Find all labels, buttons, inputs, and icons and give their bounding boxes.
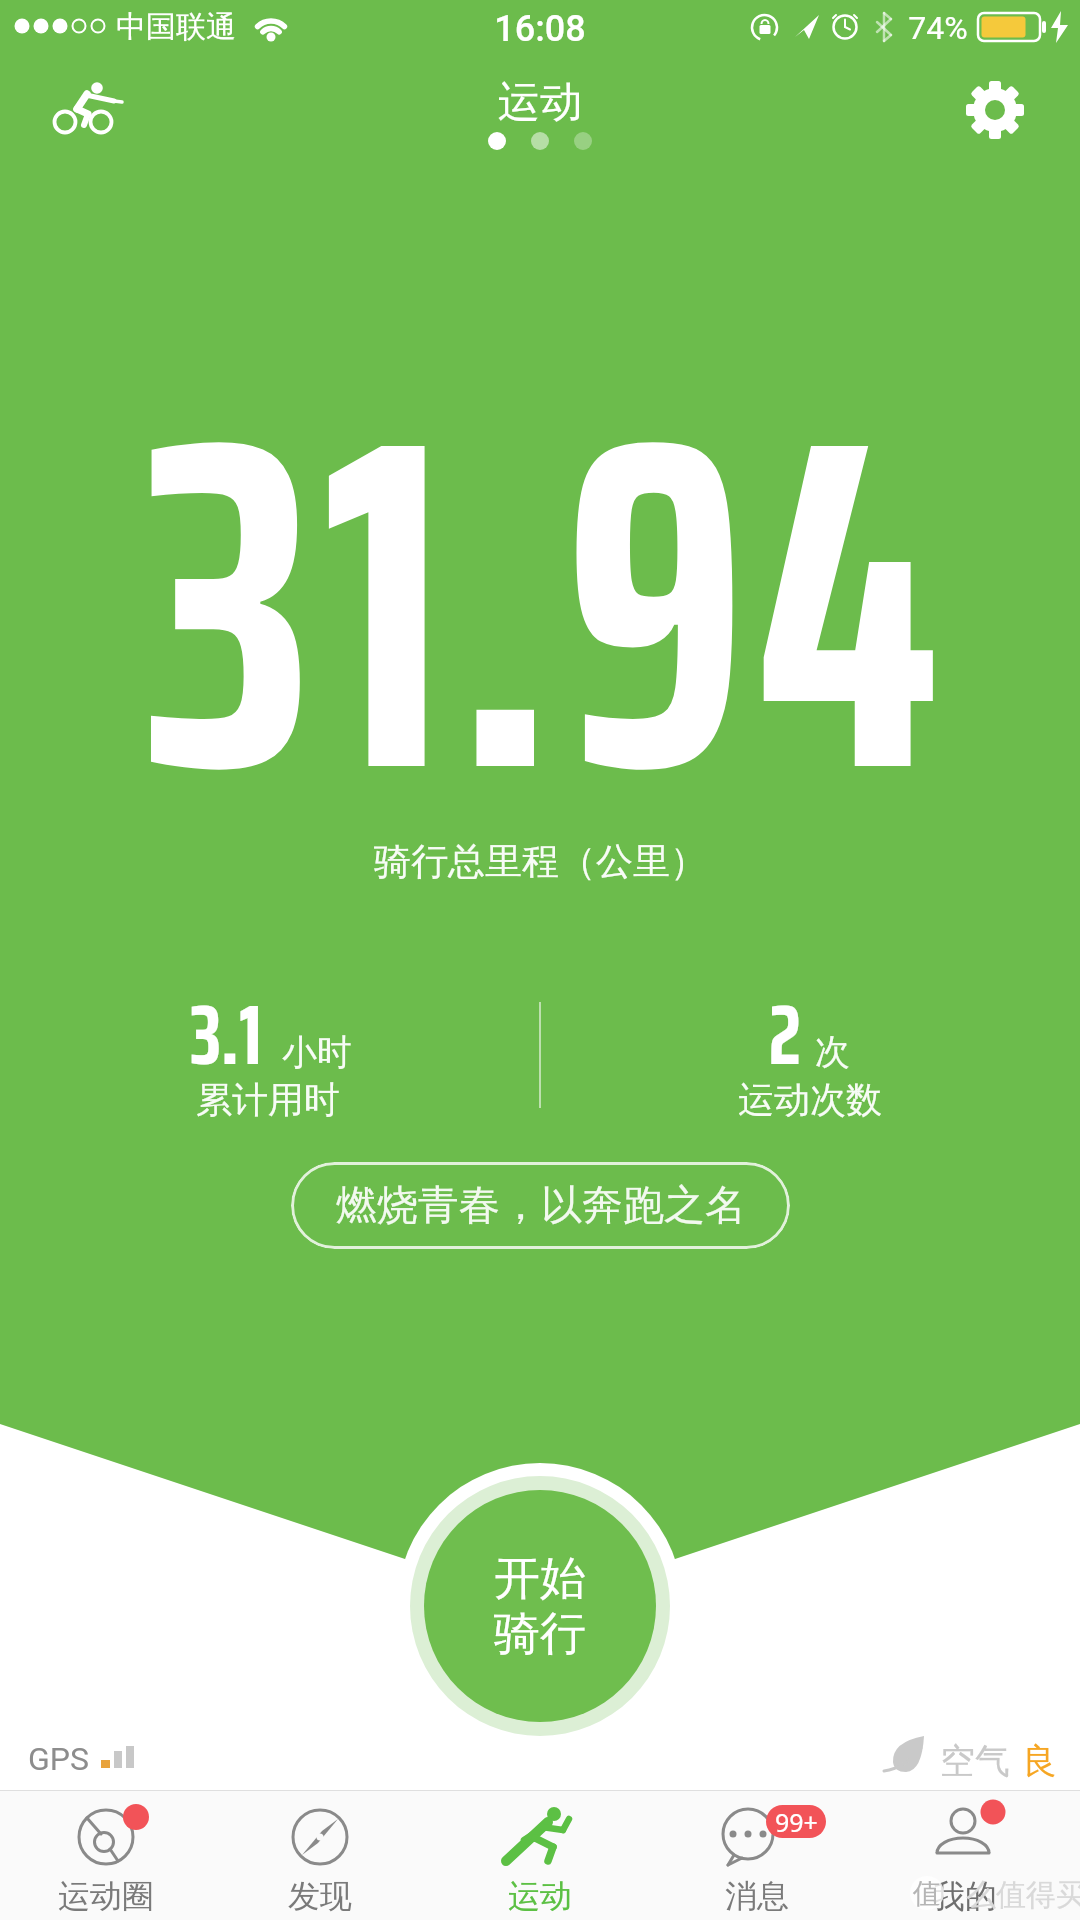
staticText: 运动次数	[738, 1077, 882, 1113]
staticText: 消息	[725, 1876, 789, 1916]
staticText: GPS	[28, 1740, 89, 1774]
button[interactable]: 运动圈	[0, 1791, 216, 1920]
staticText: 中国联通	[116, 8, 236, 46]
staticText: 我的	[933, 1876, 997, 1916]
staticText: 运动	[498, 76, 582, 122]
staticText: 小时	[282, 1030, 348, 1066]
staticText: 么值得买	[966, 1876, 1080, 1912]
staticText: 运动	[508, 1876, 572, 1916]
staticText: 空气	[940, 1739, 1006, 1775]
staticText: 2	[769, 969, 801, 1101]
staticText: 31.94	[144, 238, 948, 938]
button[interactable]	[958, 72, 1034, 148]
button[interactable]: 运动	[432, 1791, 648, 1920]
staticText: 开始 骑行	[494, 1550, 586, 1663]
staticText: 发现	[288, 1876, 352, 1916]
staticText: 运动圈	[58, 1876, 154, 1916]
button[interactable]: 99+	[648, 1791, 864, 1920]
button[interactable]: 燃烧青春，以奔跑之名	[291, 1162, 790, 1249]
staticText: 骑行总里程（公里）	[374, 838, 707, 884]
staticText: 良	[1022, 1739, 1057, 1775]
button[interactable]	[35, 72, 145, 147]
staticText: 3.1	[190, 969, 262, 1101]
staticText: 16:08	[494, 8, 586, 48]
staticText: 74%	[908, 9, 968, 45]
staticText: 燃烧青春，以奔跑之名	[336, 1180, 746, 1232]
button[interactable]: 我的	[864, 1791, 1080, 1920]
staticText: 值	[913, 1876, 941, 1910]
button[interactable]: 开始 骑行	[424, 1490, 656, 1722]
staticText: 累计用时	[196, 1077, 340, 1113]
button[interactable]: 发现	[216, 1791, 432, 1920]
staticText: 次	[815, 1030, 850, 1066]
staticText: 99+	[775, 1805, 818, 1838]
